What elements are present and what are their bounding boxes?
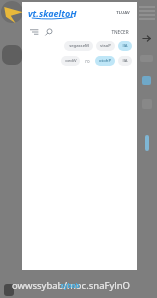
staticText: vt.skaeltoH — [28, 7, 77, 19]
staticText: TNECER — [111, 29, 129, 35]
staticText: ro — [85, 58, 90, 64]
button[interactable]: TLUAV — [114, 8, 132, 18]
button[interactable]: Filter — [28, 26, 39, 37]
button[interactable]: llA — [118, 56, 132, 66]
staticText: otohP — [99, 58, 111, 64]
staticText: segasseM — [69, 43, 89, 49]
button[interactable]: TNECER — [109, 27, 131, 37]
button[interactable]: stsoP — [96, 41, 115, 51]
button[interactable]: oediV — [61, 56, 80, 66]
button[interactable]: Hotleaks.tv home — [27, 6, 81, 20]
button[interactable]: segasseM — [64, 41, 93, 51]
staticText: owwssybab/moc.snaFylnO — [12, 279, 130, 292]
staticText: TLUAV — [116, 10, 130, 16]
staticText: oediV — [65, 58, 77, 64]
staticText: llA — [122, 43, 128, 49]
staticText: llA — [122, 58, 128, 64]
button[interactable]: otohP — [95, 56, 115, 66]
staticText: stsoP — [100, 43, 111, 49]
staticText: sybab — [60, 281, 80, 290]
button[interactable]: llA — [118, 41, 132, 51]
button[interactable]: Search — [44, 26, 55, 37]
